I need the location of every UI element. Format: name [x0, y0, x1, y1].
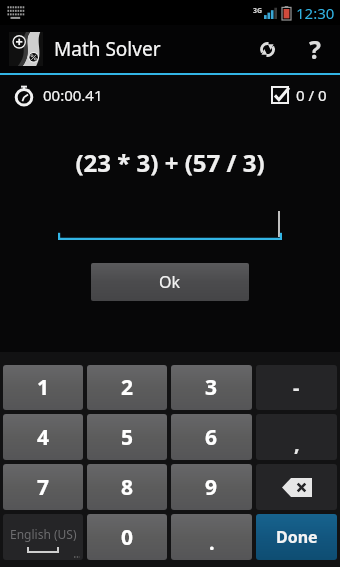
staticText: ,: [294, 430, 300, 457]
staticText: ?: [309, 32, 321, 66]
staticText: 2: [121, 373, 134, 402]
button[interactable]: Backspace: [256, 464, 337, 510]
button[interactable]: 00:00.41: [13, 84, 103, 106]
button[interactable]: 4: [3, 414, 83, 460]
staticText: Done: [276, 526, 318, 548]
button[interactable]: Refresh: [244, 25, 290, 73]
staticText: .: [209, 529, 215, 556]
staticText: 0: [121, 523, 134, 552]
staticText: 1: [37, 373, 50, 402]
button[interactable]: 7: [3, 464, 83, 510]
staticText: 4: [37, 423, 50, 452]
button[interactable]: 2: [87, 365, 167, 410]
button[interactable]: 8: [87, 464, 167, 510]
staticText: 9: [205, 473, 218, 502]
button[interactable]: 6: [171, 414, 252, 460]
button[interactable]: 0 / 0: [271, 85, 327, 105]
staticText: 5: [121, 423, 134, 452]
staticText: 0 / 0: [296, 85, 327, 105]
staticText: 3G: [253, 6, 263, 16]
staticText: 7: [37, 473, 50, 502]
button[interactable]: 1: [3, 365, 83, 410]
button[interactable]: ,: [256, 414, 337, 460]
staticText: -: [293, 374, 300, 401]
button[interactable]: Done: [256, 514, 337, 560]
button[interactable]: 9: [171, 464, 252, 510]
button[interactable]: Math Solver app icon: [9, 32, 43, 66]
staticText: English (US): [10, 526, 77, 542]
staticText: (23 * 3) + (57 / 3): [75, 146, 265, 179]
button[interactable]: [58, 207, 282, 241]
button[interactable]: Change input language, English (US): [3, 514, 83, 560]
button[interactable]: 0: [87, 514, 167, 560]
button[interactable]: 5: [87, 414, 167, 460]
staticText: 6: [205, 423, 218, 452]
button[interactable]: Help: [290, 25, 340, 73]
staticText: Ok: [159, 271, 181, 293]
button[interactable]: .: [171, 514, 252, 560]
staticText: 12:30: [296, 3, 335, 23]
staticText: 00:00.41: [43, 85, 103, 105]
button[interactable]: Ok: [91, 263, 249, 301]
button[interactable]: -: [256, 365, 337, 410]
button[interactable]: 3: [171, 365, 252, 410]
staticText: 8: [121, 473, 134, 502]
staticText: Math Solver: [54, 36, 161, 62]
staticText: 3: [205, 373, 218, 402]
